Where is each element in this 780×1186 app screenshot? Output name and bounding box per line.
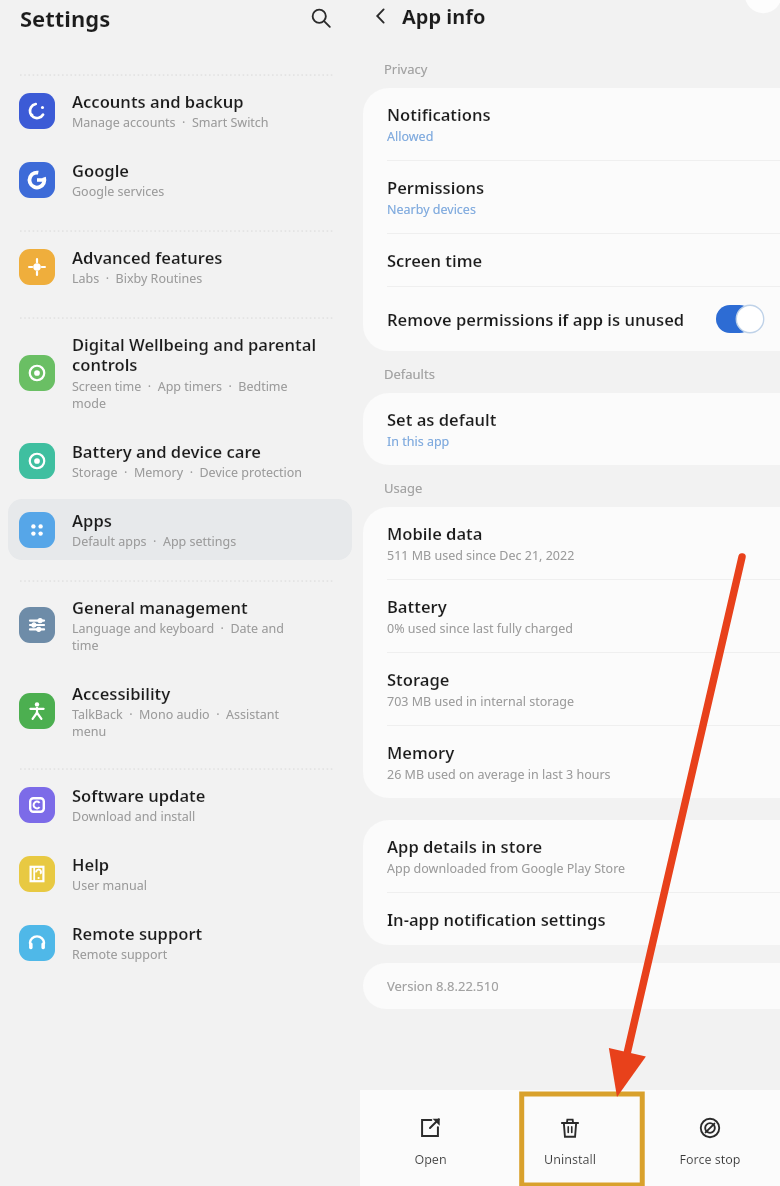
staticText: Google <box>72 159 129 181</box>
staticText: Default apps · App settings <box>72 533 237 550</box>
staticText: Version 8.8.22.510 <box>387 977 499 995</box>
staticText: Memory <box>387 741 455 763</box>
button[interactable]: Force stop <box>640 1090 780 1186</box>
staticText: Battery and device care <box>72 440 261 462</box>
button[interactable]: Software update <box>8 774 352 835</box>
staticText: In this app <box>387 433 450 450</box>
staticText: 511 MB used since Dec 21, 2022 <box>387 547 575 564</box>
staticText: Remote support <box>72 922 203 944</box>
staticText: Google services <box>72 183 165 200</box>
staticText: Apps <box>72 509 112 531</box>
staticText: 0% used since last fully charged <box>387 620 574 637</box>
button[interactable]: Search <box>299 0 343 40</box>
staticText: Battery <box>387 595 447 617</box>
button[interactable]: Permissions <box>363 161 780 233</box>
staticText: 703 MB used in internal storage <box>387 693 574 710</box>
button[interactable]: Battery <box>363 580 780 652</box>
button[interactable]: General management <box>8 586 352 664</box>
staticText: Download and install <box>72 808 196 825</box>
staticText: Set as default <box>387 408 497 430</box>
staticText: User manual <box>72 877 147 894</box>
staticText: Nearby devices <box>387 201 476 218</box>
staticText: Remote support <box>72 946 168 963</box>
staticText: Storage <box>387 668 450 690</box>
button[interactable]: Open <box>360 1090 500 1186</box>
button[interactable]: Google <box>8 149 352 210</box>
staticText: TalkBack · Mono audio · Assistant menu <box>72 706 279 740</box>
button[interactable]: Back <box>360 0 402 37</box>
button[interactable]: Notifications <box>363 88 780 160</box>
staticText: Settings <box>20 3 111 33</box>
staticText: Language and keyboard · Date and time <box>72 620 284 654</box>
staticText: Uninstall <box>544 1151 596 1168</box>
button[interactable]: Battery and device care <box>8 430 352 491</box>
staticText: Accounts and backup <box>72 90 244 112</box>
staticText: Manage accounts · Smart Switch <box>72 114 269 131</box>
staticText: App details in store <box>387 835 543 857</box>
staticText: Digital Wellbeing and parental controls <box>72 333 317 376</box>
button[interactable]: Help <box>8 843 352 904</box>
button[interactable]: Uninstall <box>500 1090 640 1186</box>
staticText: Software update <box>72 784 206 806</box>
staticText: Mobile data <box>387 522 483 544</box>
staticText: Screen time · App timers · Bedtime mode <box>72 378 288 412</box>
staticText: Remove permissions if app is unused <box>387 308 704 330</box>
button[interactable]: In-app notification settings <box>363 893 780 945</box>
staticText: Storage · Memory · Device protection <box>72 464 303 481</box>
staticText: General management <box>72 596 248 618</box>
staticText: Labs · Bixby Routines <box>72 270 203 287</box>
staticText: In-app notification settings <box>387 908 606 930</box>
staticText: Defaults <box>384 365 435 383</box>
button[interactable]: Remove permissions if app is unused <box>363 287 780 351</box>
button[interactable]: Accessibility <box>8 672 352 750</box>
staticText: Accessibility <box>72 682 171 704</box>
staticText: Permissions <box>387 176 485 198</box>
staticText: Help <box>72 853 110 875</box>
staticText: App downloaded from Google Play Store <box>387 860 626 877</box>
staticText: App info <box>402 3 486 30</box>
button[interactable]: Screen time <box>363 234 780 286</box>
staticText: Advanced features <box>72 246 223 268</box>
button[interactable]: Mobile data <box>363 507 780 579</box>
button[interactable]: Digital Wellbeing and parental controls <box>8 323 352 422</box>
staticText: 26 MB used on average in last 3 hours <box>387 766 611 783</box>
button[interactable]: Advanced features <box>8 236 352 297</box>
button[interactable]: Memory <box>363 726 780 798</box>
staticText: Screen time <box>387 249 483 271</box>
staticText: Open <box>414 1151 447 1168</box>
staticText: Notifications <box>387 103 491 125</box>
staticText: Usage <box>384 479 423 497</box>
button[interactable]: Remote support <box>8 912 352 973</box>
button[interactable]: Accounts and backup <box>8 80 352 141</box>
button[interactable]: Set as default <box>363 393 780 465</box>
staticText: Force stop <box>679 1151 741 1168</box>
button[interactable]: Storage <box>363 653 780 725</box>
button[interactable]: App details in store <box>363 820 780 892</box>
staticText: Privacy <box>384 60 428 78</box>
button[interactable]: Apps <box>8 499 352 560</box>
staticText: Allowed <box>387 128 434 145</box>
